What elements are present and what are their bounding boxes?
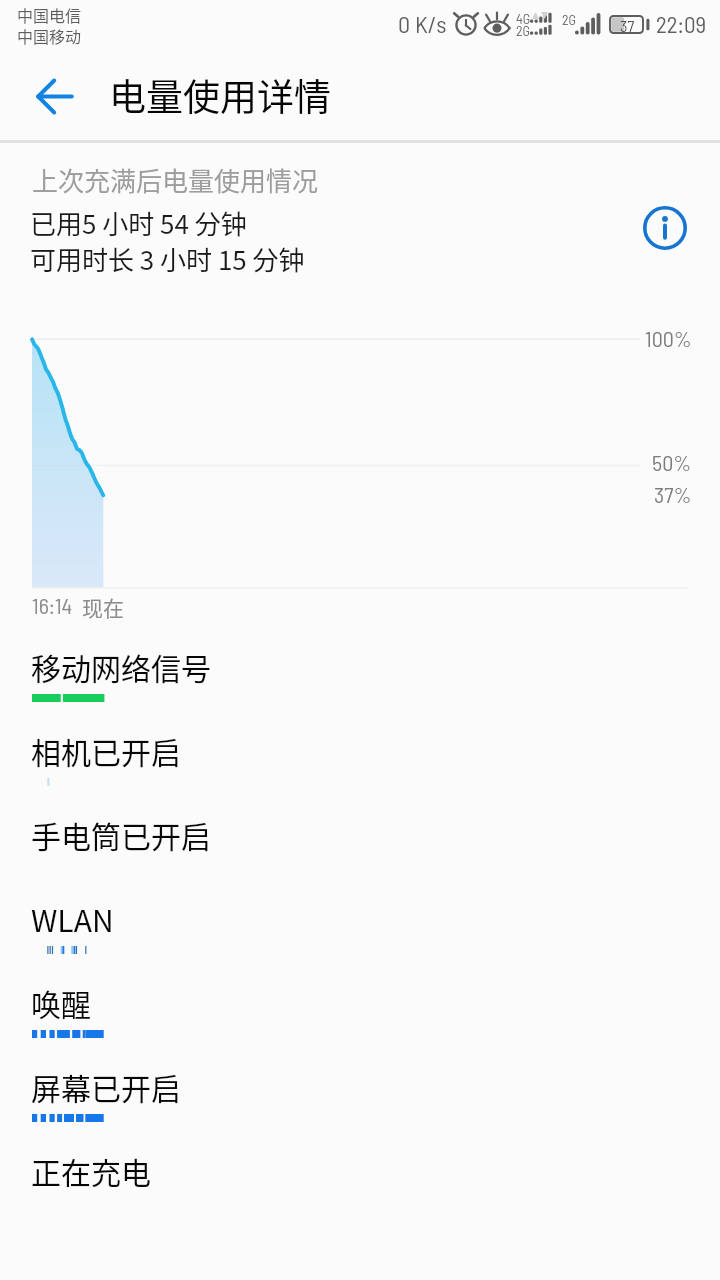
staticText: 现在 [82,592,124,622]
other: Alarm [454,13,478,36]
staticText: 正在充电 [31,1149,151,1192]
button[interactable]: Information [636,199,694,257]
staticText: 中国移动 [17,24,82,47]
other: Mobile signal [516,10,556,37]
staticText: 中国电信 [17,3,82,26]
staticText: 手电筒已开启 [31,813,211,856]
staticText: 可用时长 3 小时 15 分钟 [30,240,305,278]
staticText: 相机已开启 [31,729,181,772]
staticText: 16:14 [32,592,73,618]
button[interactable]: Back [27,68,83,124]
button[interactable]: 唤醒 [0,972,720,1056]
button[interactable]: 移动网络信号 [0,636,720,720]
staticText: 100% [645,325,692,351]
button[interactable]: 正在充电 [0,1140,720,1224]
staticText: 2G [562,11,577,28]
staticText: 2G [516,22,531,39]
staticText: 移动网络信号 [31,645,211,688]
other: Battery 37 percent [609,15,650,34]
button[interactable]: 手电筒已开启 [0,804,720,888]
staticText: 上次充满后电量使用情况 [32,161,319,199]
staticText: 50% [652,449,692,475]
staticText: 4G [516,10,531,27]
staticText: 已用5 小时 54 分钟 [30,204,247,242]
other: Eye comfort mode [484,12,510,35]
staticText: 37 [620,16,635,35]
staticText: 屏幕已开启 [31,1065,181,1108]
staticText: WLAN [31,897,114,940]
staticText: 电量使用详情 [109,68,331,122]
other: Mobile signal 2 [562,11,602,38]
staticText: 唤醒 [31,981,91,1024]
button[interactable]: 屏幕已开启 [0,1056,720,1140]
button[interactable]: WLAN [0,888,720,972]
staticText: 22:09 [656,10,707,38]
staticText: 0 K/s [398,9,447,38]
staticText: 37% [654,481,692,507]
button[interactable]: 相机已开启 [0,720,720,804]
